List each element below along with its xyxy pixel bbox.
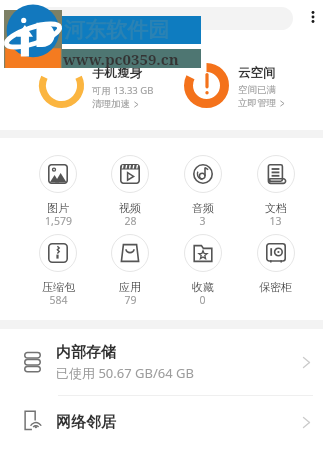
staticText: 图片 <box>47 201 69 215</box>
staticText: 收藏 <box>192 280 214 294</box>
button[interactable]: 内部存储 <box>0 329 323 395</box>
staticText: 13 <box>269 214 282 228</box>
staticText: 音频 <box>192 201 214 215</box>
staticText: 网络邻居 <box>56 413 116 432</box>
button[interactable]: 图片 <box>22 155 94 229</box>
staticText: 28 <box>124 214 137 228</box>
staticText: 清理加速 <box>92 98 130 110</box>
button[interactable]: 压缩包 <box>22 234 94 308</box>
staticText: 河东软件园 <box>64 17 169 43</box>
staticText: 视频 <box>119 201 141 215</box>
staticText: 保密柜 <box>259 280 292 294</box>
staticText: 584 <box>49 293 68 307</box>
button[interactable]: 网络邻居 <box>0 396 323 448</box>
staticText: 压缩包 <box>42 280 75 294</box>
staticText: 文档 <box>265 201 287 215</box>
staticText: 已使用 50.67 GB/64 GB <box>56 364 194 382</box>
staticText: 内部存储 <box>56 343 116 362</box>
staticText: 立即管理 <box>238 97 276 109</box>
button[interactable]: 应用 <box>94 234 166 308</box>
button[interactable]: 云空间 <box>161 37 323 130</box>
staticText: 手机瘦身 <box>92 65 142 81</box>
button[interactable]: 文档 <box>239 155 312 229</box>
button[interactable]: More options <box>300 4 323 29</box>
staticText: 应用 <box>119 280 141 294</box>
staticText: www.pc0359.cn <box>63 49 179 68</box>
button[interactable]: Search <box>34 7 293 30</box>
staticText: 空间已满 <box>238 84 276 96</box>
button[interactable]: 音频 <box>166 155 239 229</box>
staticText: 3 <box>199 214 206 228</box>
button[interactable]: 保密柜 <box>239 234 312 308</box>
staticText: 云空间 <box>238 65 276 81</box>
staticText: 79 <box>124 293 137 307</box>
staticText: 1,579 <box>45 214 72 228</box>
staticText: 0 <box>199 293 206 307</box>
staticText: 可用 13.33 GB <box>92 84 154 97</box>
button[interactable]: 视频 <box>94 155 166 229</box>
button[interactable]: 手机瘦身 <box>0 37 161 130</box>
button[interactable]: 收藏 <box>166 234 239 308</box>
